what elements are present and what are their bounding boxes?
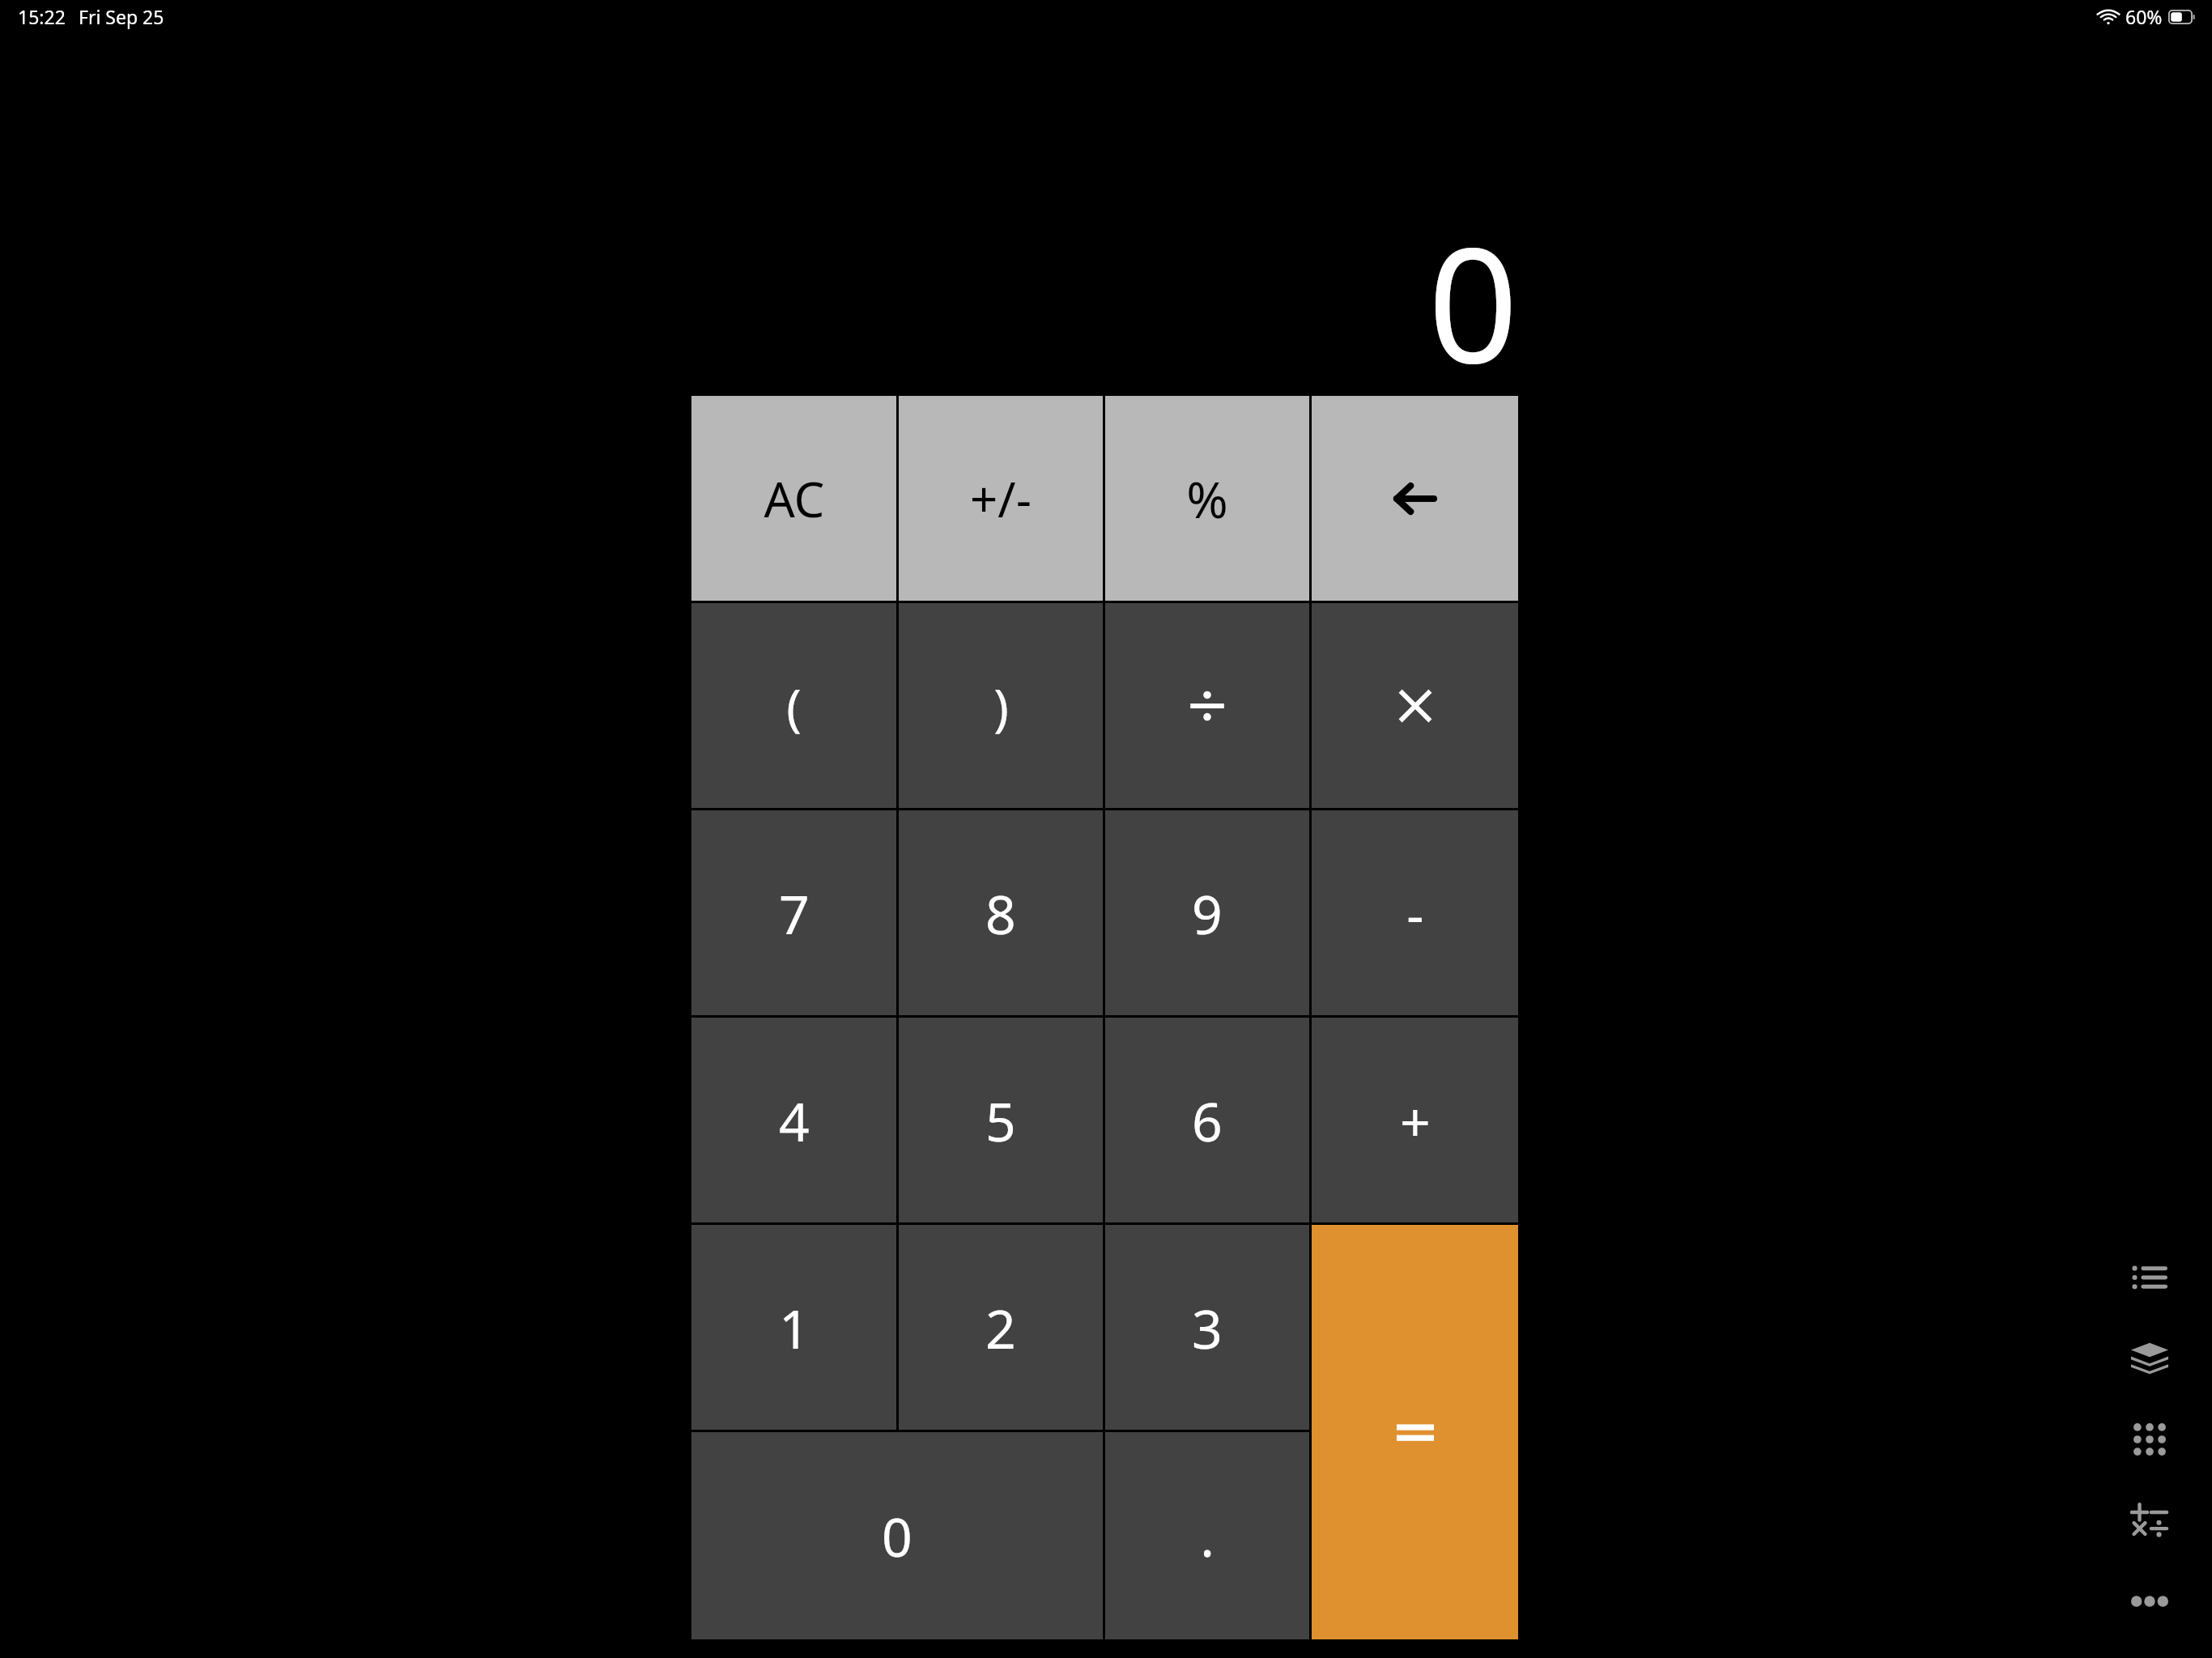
staticText: 0: [882, 1499, 912, 1572]
button[interactable]: Layers: [2109, 1318, 2190, 1399]
staticText: -: [1406, 877, 1424, 950]
staticText: AC: [764, 466, 825, 532]
button[interactable]: 1: [691, 1225, 896, 1430]
staticText: +/-: [970, 466, 1032, 532]
button[interactable]: .: [1105, 1432, 1309, 1639]
button[interactable]: Keypad: [2109, 1399, 2190, 1480]
button[interactable]: 9: [1105, 810, 1309, 1015]
button[interactable]: +: [1312, 1018, 1518, 1222]
staticText: 1: [779, 1291, 810, 1364]
button[interactable]: Divide: [1105, 603, 1309, 808]
button[interactable]: 0: [691, 1432, 1103, 1639]
button[interactable]: ): [899, 603, 1103, 808]
button[interactable]: 8: [899, 810, 1103, 1015]
button[interactable]: Operators: [2109, 1480, 2190, 1561]
staticText: %: [1186, 465, 1228, 533]
staticText: 15:22: [18, 4, 66, 29]
button[interactable]: 4: [691, 1018, 896, 1222]
button[interactable]: %: [1105, 396, 1309, 601]
button[interactable]: Multiply: [1312, 603, 1518, 808]
staticText: 2: [985, 1291, 1016, 1364]
button[interactable]: +/-: [899, 396, 1103, 601]
button[interactable]: 2: [899, 1225, 1103, 1430]
button[interactable]: 6: [1105, 1018, 1309, 1222]
staticText: ): [993, 672, 1009, 740]
staticText: 5: [985, 1084, 1016, 1157]
button[interactable]: More options: [2109, 1561, 2190, 1642]
staticText: 3: [1192, 1291, 1223, 1364]
button[interactable]: AC: [691, 396, 896, 601]
staticText: 6: [1192, 1084, 1223, 1157]
staticText: 0: [1427, 194, 1518, 396]
staticText: 60%: [2125, 4, 2163, 29]
button[interactable]: 7: [691, 810, 896, 1015]
staticText: Fri Sep 25: [79, 4, 164, 29]
staticText: 4: [779, 1084, 810, 1157]
button[interactable]: Backspace: [1312, 396, 1518, 601]
button[interactable]: -: [1312, 810, 1518, 1015]
button[interactable]: History: [2109, 1237, 2190, 1318]
staticText: +: [1400, 1084, 1431, 1157]
button[interactable]: 5: [899, 1018, 1103, 1222]
staticText: .: [1200, 1499, 1214, 1572]
staticText: 8: [985, 877, 1016, 950]
button[interactable]: Equals: [1312, 1225, 1518, 1639]
staticText: (: [786, 672, 802, 740]
button[interactable]: 3: [1105, 1225, 1309, 1430]
staticText: 7: [779, 877, 810, 950]
staticText: 9: [1192, 877, 1223, 950]
button[interactable]: (: [691, 603, 896, 808]
